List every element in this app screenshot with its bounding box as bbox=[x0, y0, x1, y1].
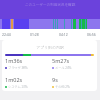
staticText: 1m36s bbox=[5, 57, 23, 64]
staticText: 04:12 bbox=[59, 32, 68, 37]
staticText: その他 2% bbox=[55, 84, 70, 89]
staticText: アプリ別の内訳 bbox=[36, 44, 64, 50]
staticText: 9s bbox=[52, 76, 58, 83]
staticText: システム 13% bbox=[8, 84, 28, 89]
staticText: 1m02s bbox=[5, 76, 23, 83]
button[interactable]: 1m36s bbox=[2, 57, 49, 70]
staticText: このユーザーの利用状況を確認 bbox=[25, 2, 76, 7]
staticText: 06:56 bbox=[87, 32, 96, 37]
staticText: ブラウザ 38% bbox=[8, 65, 28, 70]
button[interactable]: 1m02s bbox=[2, 76, 49, 89]
button[interactable]: 9s bbox=[49, 76, 97, 89]
button[interactable]: 5m27s bbox=[49, 57, 97, 70]
staticText: 01:28 bbox=[30, 32, 39, 37]
staticText: メール 24% bbox=[55, 65, 72, 70]
staticText: 22:44 bbox=[2, 32, 11, 37]
staticText: 5m27s bbox=[52, 57, 70, 64]
